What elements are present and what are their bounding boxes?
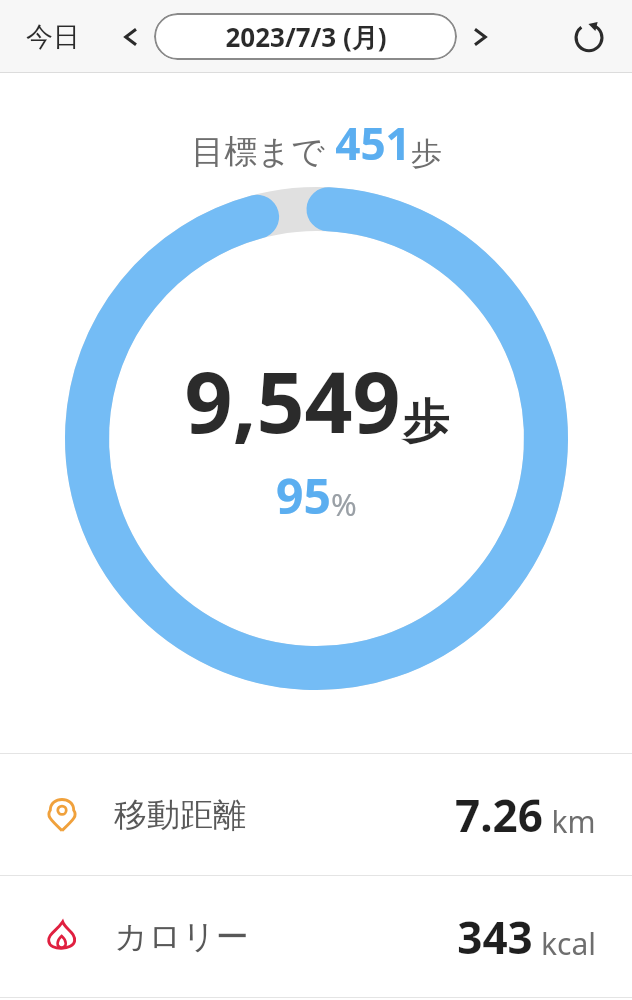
button[interactable]: 移動距離 [0, 754, 632, 875]
staticText: 歩 [403, 393, 449, 451]
staticText: 9,549 [184, 343, 401, 457]
staticText: 451 [335, 113, 411, 173]
button[interactable]: 次の日 [459, 15, 503, 59]
button[interactable]: 更新 [564, 12, 614, 62]
button[interactable]: 前の日 [108, 15, 152, 59]
staticText: 歩 [411, 134, 442, 173]
staticText: % [331, 483, 357, 525]
staticText: カロリー [114, 916, 249, 958]
staticText: 343 [457, 907, 533, 967]
staticText: 7.26 [455, 785, 543, 845]
staticText: km [551, 801, 596, 842]
staticText: 今日 [26, 20, 80, 54]
staticText: 移動距離 [114, 794, 246, 836]
staticText: 95 [276, 463, 331, 528]
button[interactable]: 2023/7/3 (月) [154, 13, 457, 60]
button[interactable]: 今日 [16, 14, 90, 60]
staticText: 2023/7/3 (月) [225, 19, 387, 55]
staticText: 目標まで [191, 131, 325, 173]
staticText: kcal [541, 923, 596, 964]
button[interactable]: カロリー [0, 876, 632, 997]
button[interactable]: 歩数 9,549歩 目標の95% [65, 187, 568, 690]
